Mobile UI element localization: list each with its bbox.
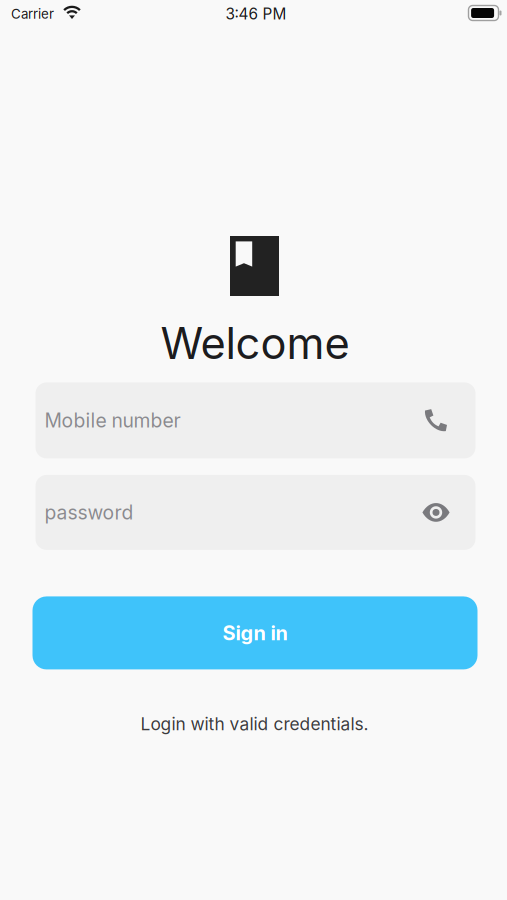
staticText: Login with valid credentials. xyxy=(140,713,368,734)
button[interactable]: Show password xyxy=(414,475,458,550)
staticText: Welcome xyxy=(160,317,349,369)
staticText: password xyxy=(44,501,133,524)
button[interactable]: password xyxy=(35,475,475,550)
staticText: Carrier xyxy=(11,6,54,22)
staticText: Mobile number xyxy=(44,409,180,432)
staticText: 3:46 PM xyxy=(225,5,286,23)
button[interactable]: Call xyxy=(413,382,457,458)
staticText: Sign in xyxy=(222,621,287,645)
button[interactable]: Mobile number xyxy=(35,382,475,458)
button[interactable]: Sign in xyxy=(32,596,477,669)
